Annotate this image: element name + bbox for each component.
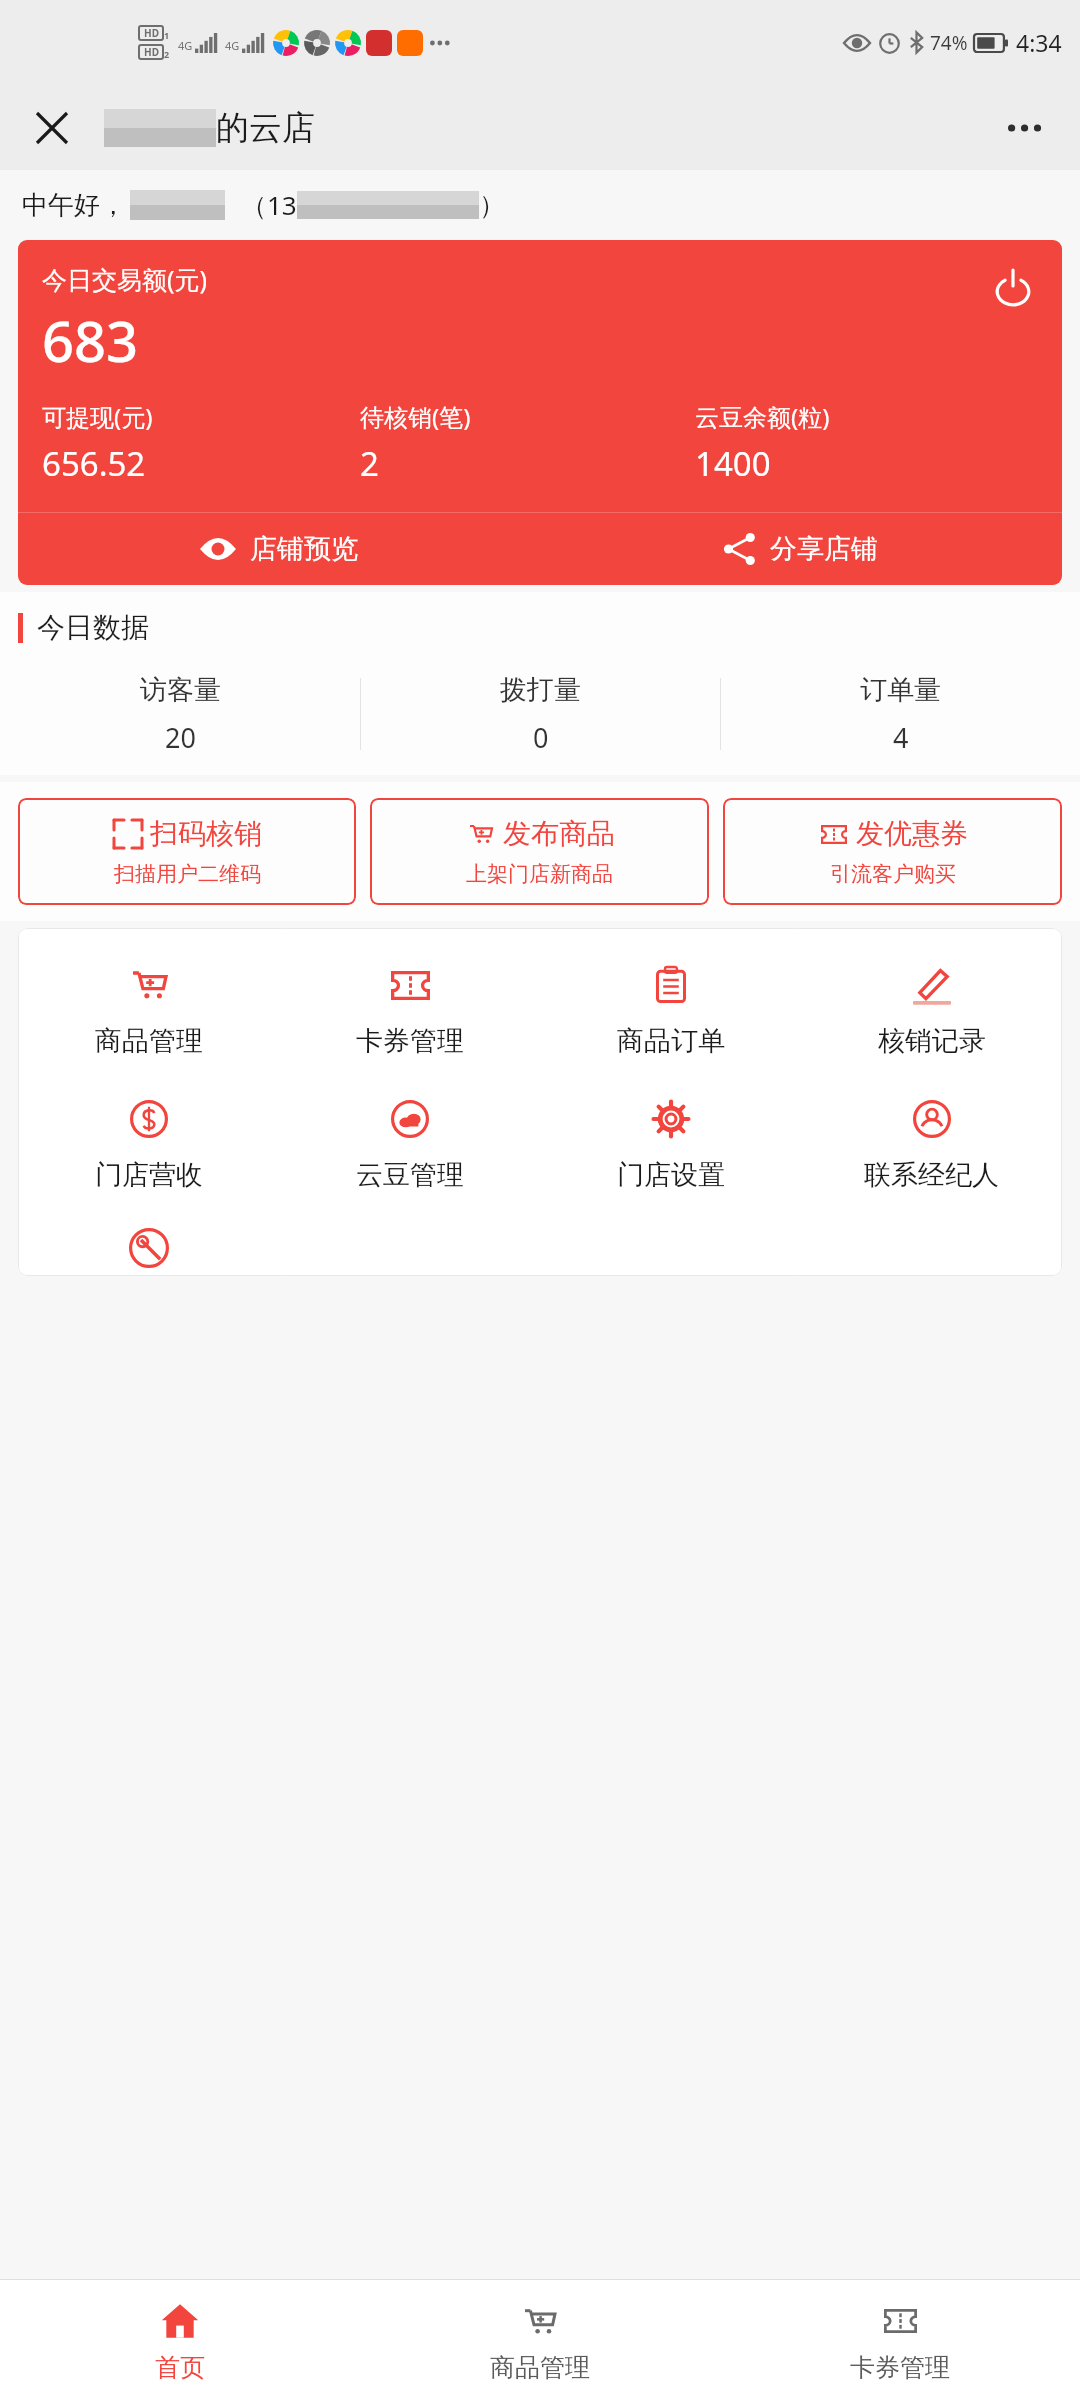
button[interactable]: 发布商品 [370,798,709,905]
staticText: 上架门店新商品 [466,861,613,887]
button[interactable]: 访客量 [0,673,360,756]
staticText: 卡券管理 [356,1024,464,1058]
staticText: HD [144,45,159,59]
staticText: 门店设置 [617,1158,725,1192]
staticText: 4G [225,38,240,53]
button[interactable]: 商品管理 [18,954,279,1062]
staticText: 4G [178,38,193,53]
staticText: 引流客户购买 [830,861,956,887]
staticText: 中午好， [22,189,126,222]
button[interactable]: 联系经纪人 [801,1088,1062,1196]
button[interactable]: 发优惠券 [723,798,1062,905]
button[interactable]: 店铺预览 [18,513,540,585]
button[interactable]: 拨打量 [361,673,720,756]
button[interactable]: 更多 [998,98,1058,158]
staticText: 扫码核销 [150,816,262,851]
staticText: 联系经纪人 [864,1158,999,1192]
staticText: 云豆余额(粒) [695,400,830,433]
staticText: 待核销(笔) [360,400,471,433]
button[interactable]: 商品管理 [360,2280,720,2400]
staticText: 订单量 [860,673,941,707]
staticText: 分享店铺 [770,532,878,566]
staticText: 可提现(元) [42,400,153,433]
staticText: 656.52 [42,441,146,486]
button[interactable]: 维修 [121,1220,177,1276]
staticText: 发优惠券 [856,816,968,851]
staticText: 访客量 [140,673,221,707]
staticText: 首页 [155,2352,205,2383]
button[interactable]: 云豆管理 [279,1088,540,1196]
button[interactable]: 关店 [986,262,1040,316]
staticText: 拨打量 [500,673,581,707]
staticText: 今日数据 [37,610,149,645]
staticText: 4:34 [1016,27,1062,58]
staticText: HD [144,26,159,40]
staticText: 商品管理 [490,2352,590,2383]
staticText: 74% [930,30,968,56]
staticText: 今日交易额(元) [42,262,208,296]
staticText: 1 [164,29,170,41]
button[interactable]: 商品订单 [540,954,801,1062]
button[interactable]: 核销记录 [801,954,1062,1062]
staticText: 扫描用户二维码 [114,861,261,887]
staticText: 0 [533,719,549,756]
button[interactable]: 卡券管理 [720,2280,1080,2400]
staticText: 2 [164,48,170,60]
staticText: 2 [360,441,379,486]
staticText: 商品订单 [617,1024,725,1058]
button[interactable]: 分享店铺 [540,513,1062,585]
staticText: 核销记录 [878,1024,986,1058]
staticText: 云豆管理 [356,1158,464,1192]
button[interactable]: 门店设置 [540,1088,801,1196]
staticText: 4 [893,719,909,756]
button[interactable]: 关闭 [26,102,78,154]
staticText: 的云店 [216,107,315,149]
staticText: 1400 [695,441,771,486]
staticText: 发布商品 [503,816,615,851]
staticText: 卡券管理 [850,2352,950,2383]
button[interactable]: 订单量 [721,673,1080,756]
staticText: 683 [42,302,139,378]
button[interactable]: 门店营收 [18,1088,279,1196]
button[interactable]: 卡券管理 [279,954,540,1062]
staticText: （13 [241,187,297,223]
staticText: 20 [165,719,196,756]
staticText: 商品管理 [95,1024,203,1058]
staticText: 门店营收 [95,1158,203,1192]
staticText: 店铺预览 [250,532,358,566]
staticText: ） [479,189,505,222]
button[interactable]: 扫码核销 [18,798,356,905]
button[interactable]: 首页 [0,2280,360,2400]
